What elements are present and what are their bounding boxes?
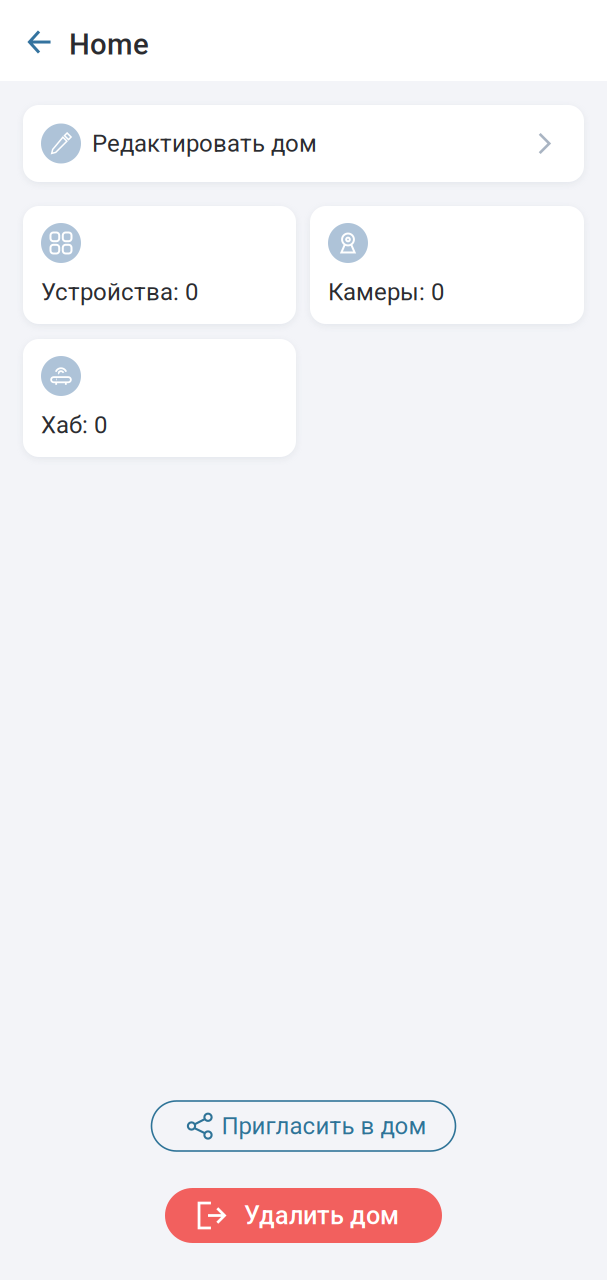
staticText: Камеры: 0 (328, 278, 444, 306)
staticText: Устройства: 0 (41, 278, 198, 306)
staticText: Редактировать дом (92, 129, 317, 157)
staticText: Home (69, 27, 149, 62)
button[interactable]: Хаб: 0 (23, 339, 296, 457)
button[interactable]: Редактировать дом (23, 105, 584, 182)
staticText: Удалить дом (244, 1201, 399, 1230)
button[interactable]: Удалить дом (165, 1188, 442, 1243)
button[interactable]: Камеры: 0 (310, 206, 584, 324)
button[interactable]: Пригласить в дом (151, 1101, 455, 1151)
button[interactable]: Устройства: 0 (23, 206, 296, 324)
staticText: Пригласить в дом (221, 1112, 426, 1140)
button[interactable]: Back (0, 16, 69, 65)
staticText: Хаб: 0 (41, 411, 107, 439)
